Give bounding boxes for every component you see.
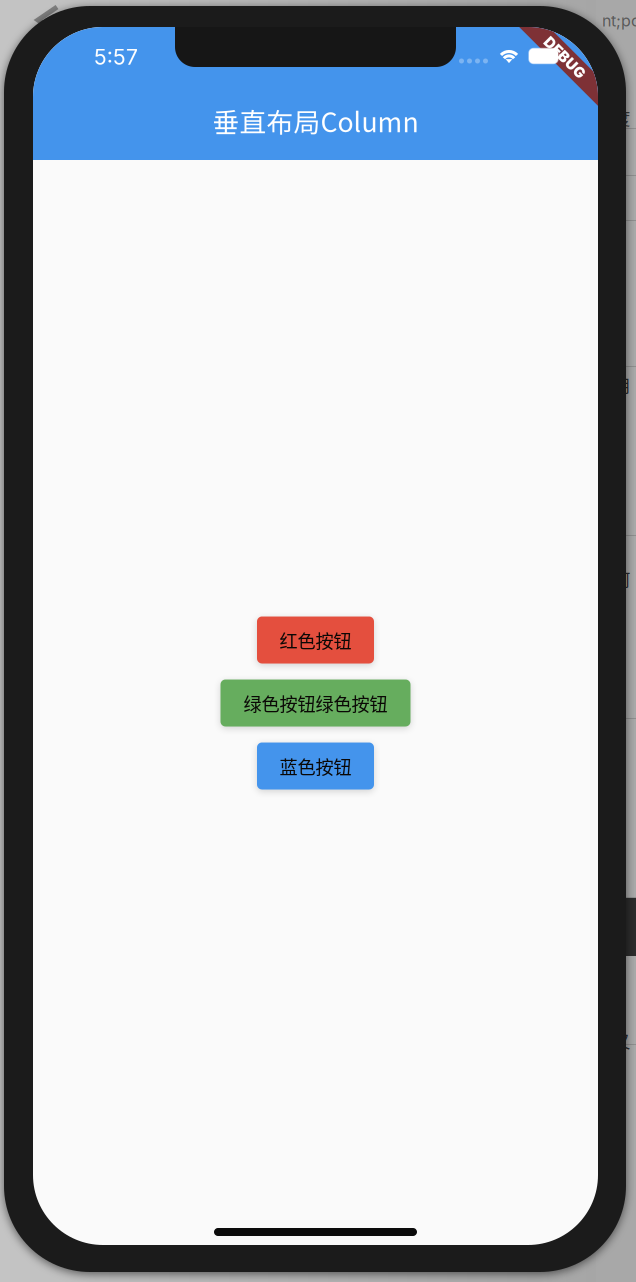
staticText: 蓝色按钮 (279, 753, 351, 779)
staticText: 用 (613, 372, 630, 397)
staticText: 度 (613, 105, 630, 130)
staticText: 5:57 (94, 44, 138, 70)
staticText: 绿色按钮绿色按钮 (243, 690, 387, 716)
staticText: DEBUG (538, 50, 590, 68)
staticText: 红色按钮 (279, 627, 351, 653)
staticText: 垂直布局Column (212, 101, 418, 140)
button[interactable]: 蓝色按钮 (257, 742, 374, 789)
button[interactable]: 绿色按钮绿色按钮 (220, 679, 410, 726)
staticText: 阿 (613, 566, 630, 591)
button[interactable]: 红色按钮 (257, 616, 374, 663)
staticText: 又 (613, 1028, 630, 1053)
staticText: nt;pc (602, 11, 636, 30)
